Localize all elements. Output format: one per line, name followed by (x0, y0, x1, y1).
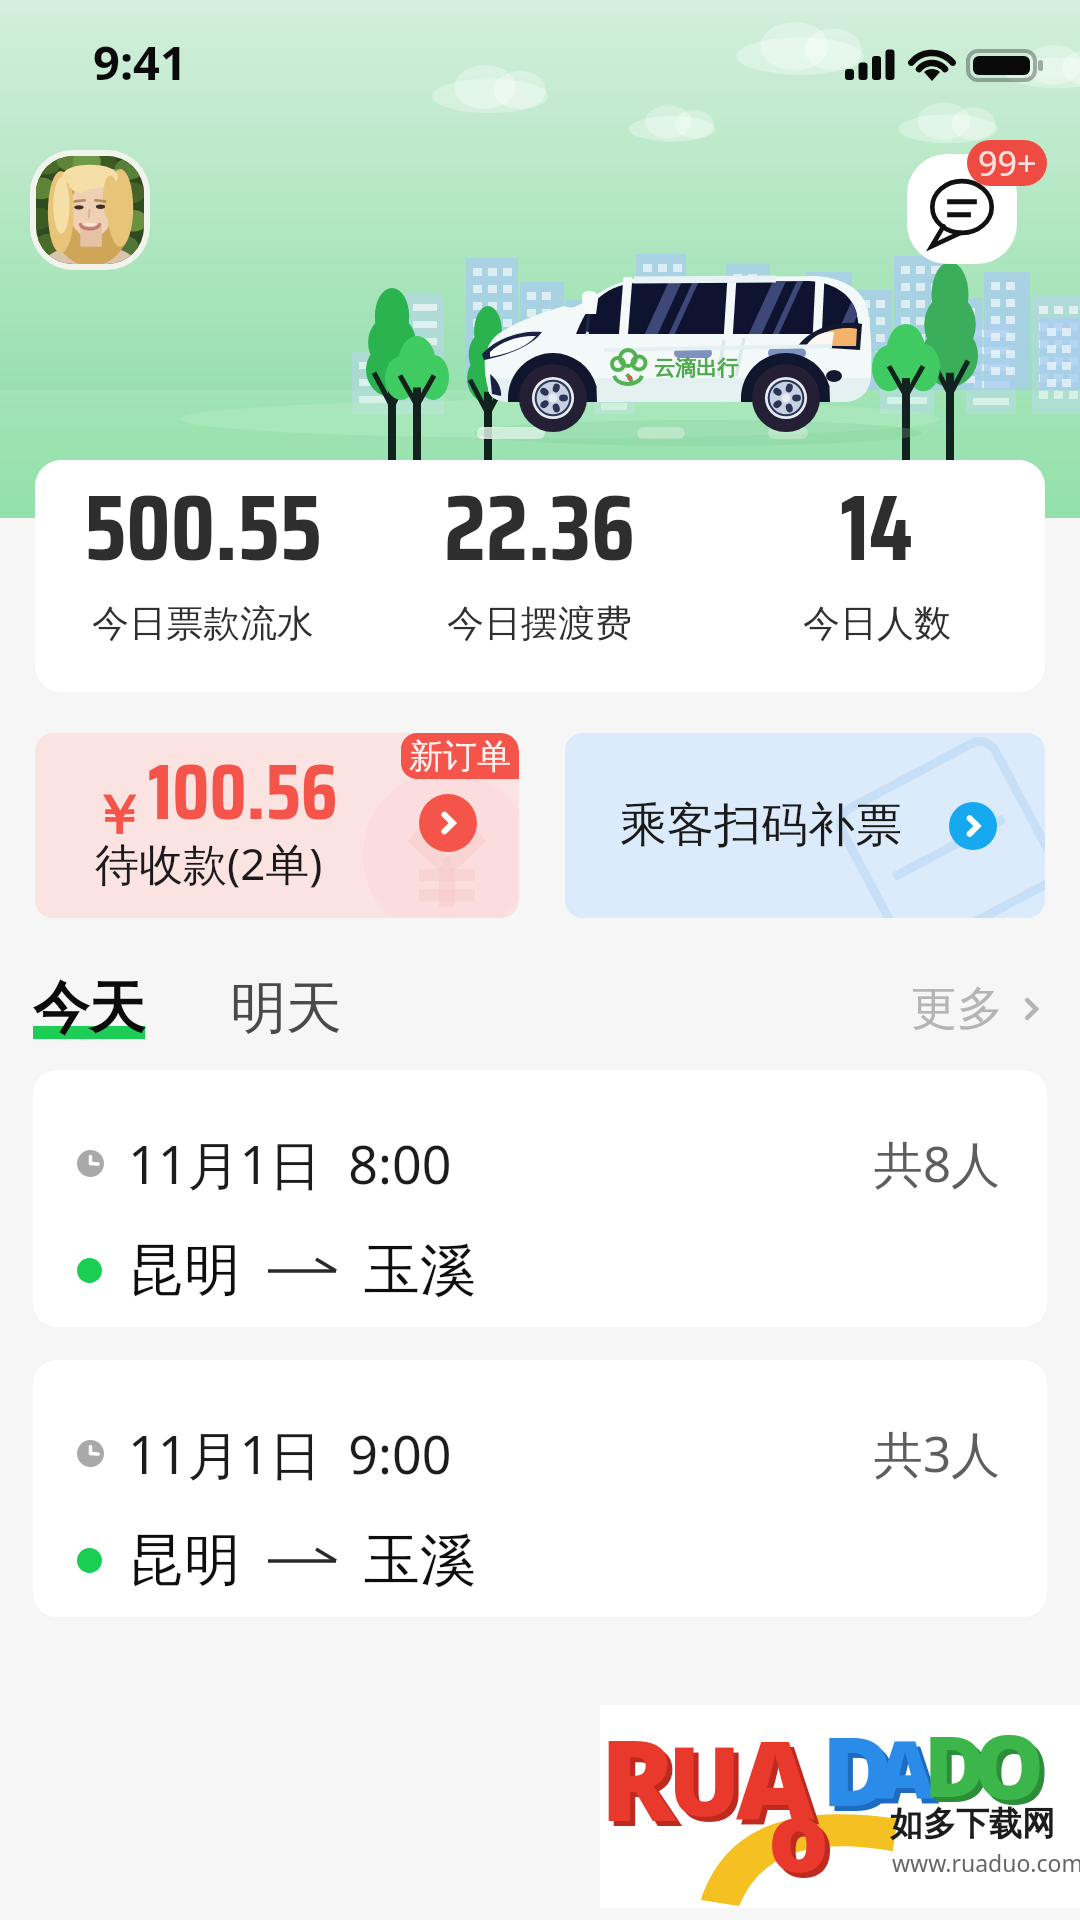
staticText: 待收款(2单) (95, 833, 323, 893)
staticText: R (600, 1701, 676, 1854)
staticText: o (768, 1769, 830, 1900)
staticText: O (974, 1705, 1045, 1825)
staticText: 今日票款流水 (92, 600, 314, 647)
staticText: 明天 (230, 973, 342, 1044)
staticText: 今天 (33, 973, 145, 1044)
staticText: 新订单 (409, 735, 511, 778)
staticText: A (741, 1710, 820, 1857)
staticText: A (736, 1705, 815, 1852)
staticText: D (822, 1703, 893, 1834)
staticText: 100.56 (148, 733, 338, 853)
button[interactable]: 11月1日 9:00 (33, 1360, 1047, 1617)
staticText: 14 (840, 460, 913, 600)
staticText: ￥ (91, 782, 145, 850)
staticText: U (668, 1713, 741, 1844)
staticText: 今日人数 (803, 600, 951, 647)
button[interactable]: 11月1日 8:00 (33, 1070, 1047, 1327)
button[interactable]: 明天 (230, 973, 342, 1044)
button[interactable]: 500.55 (35, 460, 371, 692)
staticText: 11月1日 8:00 (128, 1128, 452, 1199)
staticText: A (876, 1713, 935, 1822)
staticText: 今日摆渡费 (447, 600, 632, 647)
button[interactable]: Messages (907, 154, 1017, 264)
button[interactable]: 更多 (911, 980, 1047, 1038)
staticText: o (773, 1774, 835, 1905)
staticText: 更多 (911, 980, 1003, 1038)
button[interactable]: ￥ (35, 733, 519, 918)
staticText: 昆明 (128, 1235, 240, 1306)
staticText: 9:41 (93, 30, 187, 94)
staticText: D (924, 1707, 986, 1821)
button[interactable]: 14 (708, 460, 1045, 692)
staticText: 如多下载网 (890, 1803, 1055, 1845)
staticText: D (827, 1708, 898, 1839)
button[interactable]: 今天 (33, 973, 145, 1044)
staticText: 共8人 (874, 1130, 1001, 1197)
staticText: www.ruaduo.com (892, 1847, 1080, 1878)
staticText: 11月1日 9:00 (128, 1418, 452, 1489)
staticText: 玉溪 (364, 1235, 476, 1306)
staticText: 99+ (978, 140, 1037, 186)
staticText: 500.55 (84, 460, 322, 600)
button[interactable]: 乘客扫码补票 (565, 733, 1045, 918)
staticText: 昆明 (128, 1525, 240, 1596)
staticText: O (979, 1710, 1050, 1830)
staticText: 22.36 (444, 460, 635, 600)
staticText: R (605, 1706, 681, 1859)
staticText: U (673, 1718, 746, 1849)
staticText: 乘客扫码补票 (620, 796, 902, 855)
staticText: A (881, 1718, 940, 1827)
staticText: 共3人 (874, 1420, 1001, 1487)
button[interactable]: 22.36 (371, 460, 708, 692)
staticText: 云滴出行 (654, 355, 738, 381)
staticText: D (929, 1712, 991, 1826)
button[interactable]: Profile (30, 150, 150, 270)
staticText: 玉溪 (364, 1525, 476, 1596)
